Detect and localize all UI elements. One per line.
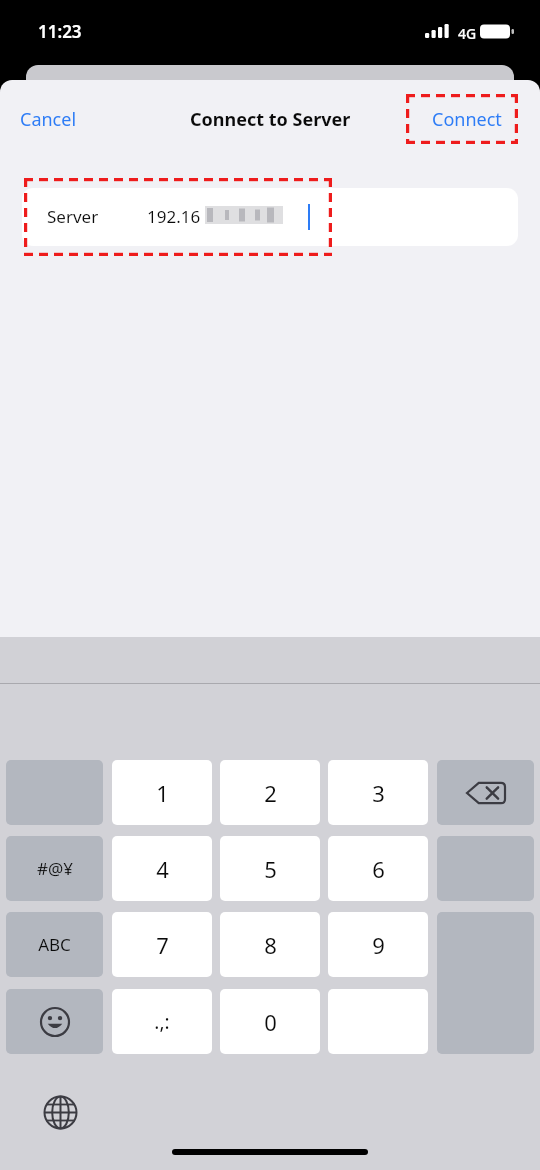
staticText: .,: — [154, 1009, 170, 1035]
staticText: 7 — [156, 930, 169, 960]
button[interactable]: 1 — [112, 760, 212, 825]
button[interactable]: .,: — [112, 989, 212, 1054]
button[interactable]: 0 — [220, 989, 320, 1054]
button[interactable]: 8 — [220, 912, 320, 977]
staticText: 1 — [156, 778, 169, 808]
staticText: Connect to Server — [190, 107, 351, 132]
button[interactable]: 7 — [112, 912, 212, 977]
button[interactable]: Switch keyboard language — [36, 1088, 84, 1136]
staticText: 4G — [458, 24, 477, 43]
button[interactable]: 3 — [328, 760, 428, 825]
staticText: 9 — [372, 930, 385, 960]
staticText: 192.16 — [147, 205, 201, 228]
button[interactable]: ABC — [6, 912, 103, 977]
button[interactable]: 4 — [112, 836, 212, 901]
staticText: 5 — [264, 854, 277, 884]
button[interactable]: Backspace — [437, 760, 534, 825]
staticText: 4 — [156, 854, 169, 884]
button[interactable]: Server — [22, 188, 518, 246]
staticText: 8 — [264, 930, 277, 960]
button[interactable]: 6 — [328, 836, 428, 901]
staticText: Connect — [432, 107, 502, 132]
staticText: #@¥ — [37, 857, 73, 880]
staticText: 11:23 — [38, 20, 82, 43]
button[interactable]: Connect — [414, 100, 520, 138]
staticText: 3 — [372, 778, 385, 808]
button[interactable]: 9 — [328, 912, 428, 977]
button[interactable]: Emoji keyboard — [6, 989, 103, 1054]
button[interactable]: #@¥ — [6, 836, 103, 901]
button[interactable]: 5 — [220, 836, 320, 901]
staticText: Server — [47, 205, 99, 228]
button[interactable]: 2 — [220, 760, 320, 825]
staticText: 0 — [264, 1007, 277, 1037]
staticText: 6 — [372, 854, 385, 884]
staticText: 2 — [264, 778, 277, 808]
staticText: Cancel — [20, 107, 77, 132]
button[interactable]: Cancel — [20, 100, 104, 138]
staticText: ABC — [38, 933, 71, 956]
